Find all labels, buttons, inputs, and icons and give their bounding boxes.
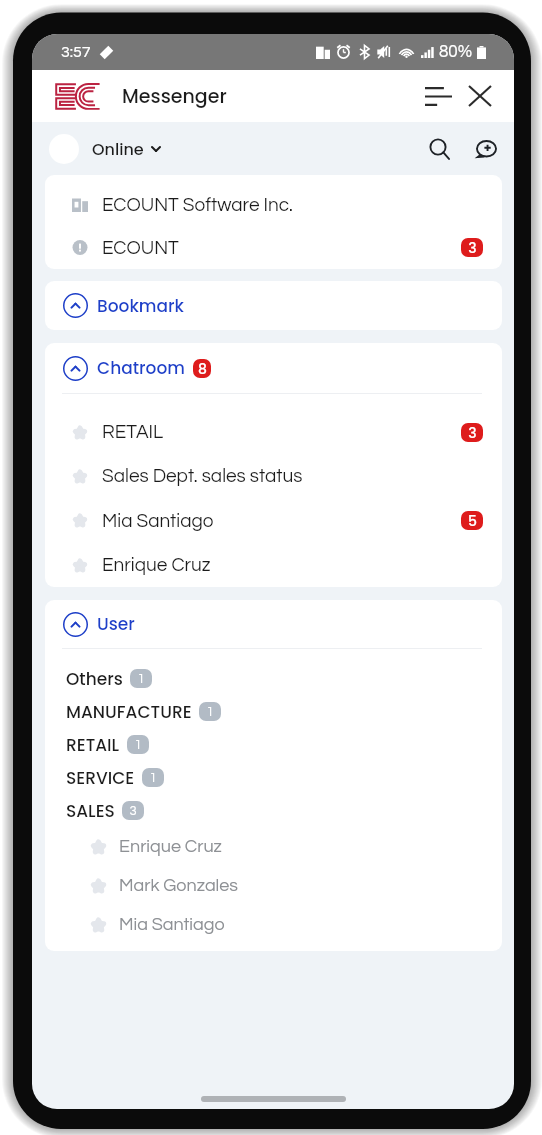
button[interactable]: Sales Dept. sales status bbox=[45, 454, 502, 498]
staticText: MANUFACTURE bbox=[66, 700, 192, 724]
staticText: 8 bbox=[198, 359, 207, 378]
staticText: 1 bbox=[206, 705, 214, 718]
staticText: 3:57 bbox=[61, 44, 91, 60]
staticText: Enrique Cruz bbox=[102, 555, 211, 575]
button[interactable]: RETAIL bbox=[45, 728, 502, 761]
staticText: 3 bbox=[129, 804, 137, 817]
staticText: Online bbox=[92, 138, 144, 160]
button[interactable]: ECOUNT bbox=[45, 226, 502, 269]
staticText: ECOUNT bbox=[102, 238, 179, 258]
staticText: Sales Dept. sales status bbox=[102, 466, 303, 486]
button[interactable]: User bbox=[45, 600, 502, 648]
staticText: ECOUNT Software Inc. bbox=[102, 195, 293, 215]
staticText: Mark Gonzales bbox=[119, 876, 238, 895]
staticText: Enrique Cruz bbox=[119, 837, 222, 856]
staticText: Mia Santiago bbox=[119, 915, 225, 934]
staticText: Others bbox=[66, 667, 123, 691]
button[interactable]: Search bbox=[422, 131, 458, 167]
button[interactable]: RETAIL bbox=[45, 410, 502, 454]
staticText: SERVICE bbox=[66, 766, 135, 790]
staticText: RETAIL bbox=[66, 733, 120, 757]
staticText: User bbox=[97, 612, 135, 636]
staticText: Bookmark bbox=[97, 294, 184, 318]
button[interactable]: Others bbox=[45, 662, 502, 695]
staticText: Messenger bbox=[122, 83, 227, 110]
button[interactable]: Chatroom bbox=[45, 343, 502, 393]
button[interactable]: SALES bbox=[45, 794, 502, 827]
button[interactable]: Close bbox=[460, 76, 500, 116]
button[interactable]: Bookmark bbox=[45, 281, 502, 330]
button[interactable]: Mia Santiago bbox=[45, 905, 502, 944]
button[interactable]: Enrique Cruz bbox=[45, 543, 502, 587]
staticText: 3 bbox=[468, 238, 477, 257]
staticText: 1 bbox=[134, 738, 142, 751]
button[interactable]: Enrique Cruz bbox=[45, 827, 502, 866]
button[interactable]: ECOUNT Software Inc. bbox=[45, 183, 502, 226]
staticText: SALES bbox=[66, 799, 115, 823]
staticText: 3 bbox=[468, 423, 477, 442]
staticText: 80% bbox=[439, 43, 473, 61]
staticText: 5 bbox=[468, 511, 477, 530]
button[interactable]: Mark Gonzales bbox=[45, 866, 502, 905]
button[interactable]: New chat bbox=[468, 131, 504, 167]
staticText: 1 bbox=[149, 771, 157, 784]
button[interactable]: Menu bbox=[418, 76, 458, 116]
button[interactable]: Online bbox=[90, 132, 163, 166]
staticText: RETAIL bbox=[102, 422, 164, 442]
staticText: 1 bbox=[137, 672, 145, 685]
button[interactable]: MANUFACTURE bbox=[45, 695, 502, 728]
button[interactable]: SERVICE bbox=[45, 761, 502, 794]
staticText: Mia Santiago bbox=[102, 511, 214, 531]
button[interactable]: Mia Santiago bbox=[45, 498, 502, 543]
staticText: Chatroom bbox=[97, 356, 185, 380]
